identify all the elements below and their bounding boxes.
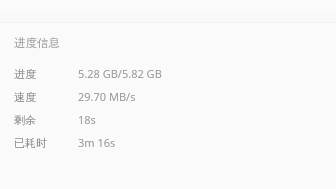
staticText: 剩余 bbox=[14, 113, 36, 127]
staticText: 已耗时 bbox=[14, 136, 47, 150]
staticText: 进度信息 bbox=[14, 36, 60, 50]
button[interactable]: 速度 bbox=[0, 85, 336, 108]
button[interactable]: 已耗时 bbox=[0, 131, 336, 154]
staticText: 进度 bbox=[14, 67, 36, 81]
staticText: 5.28 GB/5.82 GB bbox=[78, 66, 162, 81]
staticText: 3m 16s bbox=[78, 135, 116, 150]
staticText: 速度 bbox=[14, 90, 36, 104]
staticText: 29.70 MB/s bbox=[78, 89, 136, 104]
button[interactable]: 进度 bbox=[0, 62, 336, 85]
staticText: 18s bbox=[78, 112, 96, 127]
button[interactable]: 剩余 bbox=[0, 108, 336, 131]
